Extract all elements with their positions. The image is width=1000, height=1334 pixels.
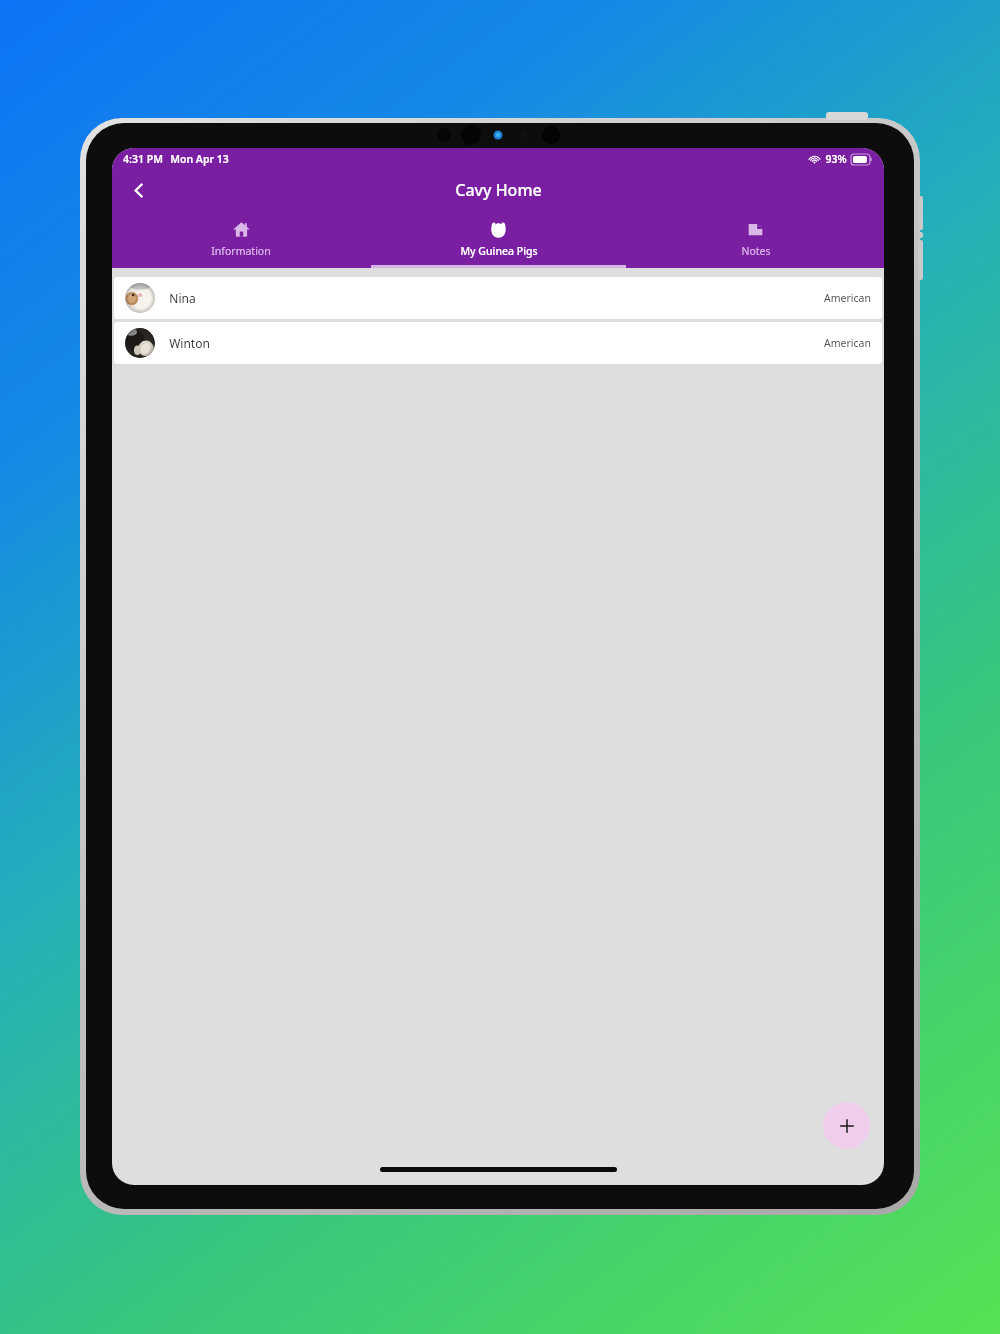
button[interactable]: Information [112,210,370,268]
button[interactable]: Winton [114,322,882,364]
staticText: Nina [169,290,196,306]
button[interactable]: Back [120,172,156,208]
button[interactable]: My Guinea Pigs [370,210,627,268]
staticText: Mon Apr 13 [170,152,229,166]
staticText: Cavy Home [455,179,542,201]
button[interactable]: Nina [114,277,882,319]
staticText: My Guinea Pigs [460,244,538,258]
button[interactable]: Notes [627,210,884,268]
button[interactable]: Add guinea pig [823,1102,870,1149]
staticText: American [824,291,871,305]
staticText: Winton [169,335,210,351]
staticText: 93% [825,152,847,166]
staticText: Notes [741,244,771,258]
staticText: 4:31 PM [123,152,163,166]
staticText: American [824,336,871,350]
staticText: Information [211,244,271,258]
